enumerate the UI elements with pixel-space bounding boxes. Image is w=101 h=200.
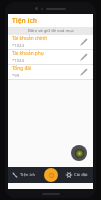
staticText: *1024 [12,43,24,49]
staticText: Tiện ích [20,172,36,178]
button[interactable]: Sửa Tài khoản phụ [77,51,89,63]
button[interactable]: Tài khoản chính [8,35,93,50]
button[interactable]: Cài đặt [60,167,93,183]
staticText: Bấm và giữ để xoá mục [28,28,74,34]
button[interactable]: Tài khoản phụ [8,50,93,65]
button[interactable]: Tổng đài [8,65,93,80]
button[interactable]: Sửa Tổng đài [77,66,89,78]
button[interactable]: Tiện ích [8,167,40,183]
staticText: Cài đặt [74,172,88,178]
staticText: Tài khoản chính [12,35,48,42]
staticText: Tiện ích [12,16,38,25]
staticText: *99 [12,73,20,79]
button[interactable]: Gọi [44,168,58,182]
button[interactable]: Sửa Tài khoản chính [77,36,89,48]
staticText: Tổng đài [12,65,32,72]
staticText: Tài khoản phụ [12,50,44,57]
button[interactable]: Thêm tiện ích [71,145,87,161]
staticText: *1024 [12,58,24,64]
